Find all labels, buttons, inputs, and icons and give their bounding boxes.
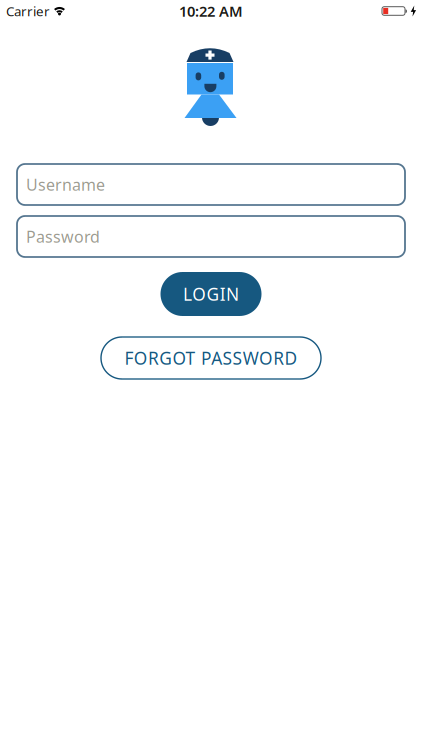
staticText: Username [26, 174, 105, 195]
button[interactable]: FORGOT PASSWORD [101, 337, 321, 379]
textField[interactable]: Username [26, 174, 405, 195]
staticText: Password [26, 226, 100, 247]
textField[interactable]: Password [26, 226, 405, 247]
staticText: Carrier [6, 2, 50, 20]
button[interactable]: LOGIN [160, 272, 261, 316]
staticText: FORGOT PASSWORD [125, 346, 297, 369]
staticText: LOGIN [183, 282, 239, 305]
staticText: 10:22 AM [179, 1, 243, 21]
